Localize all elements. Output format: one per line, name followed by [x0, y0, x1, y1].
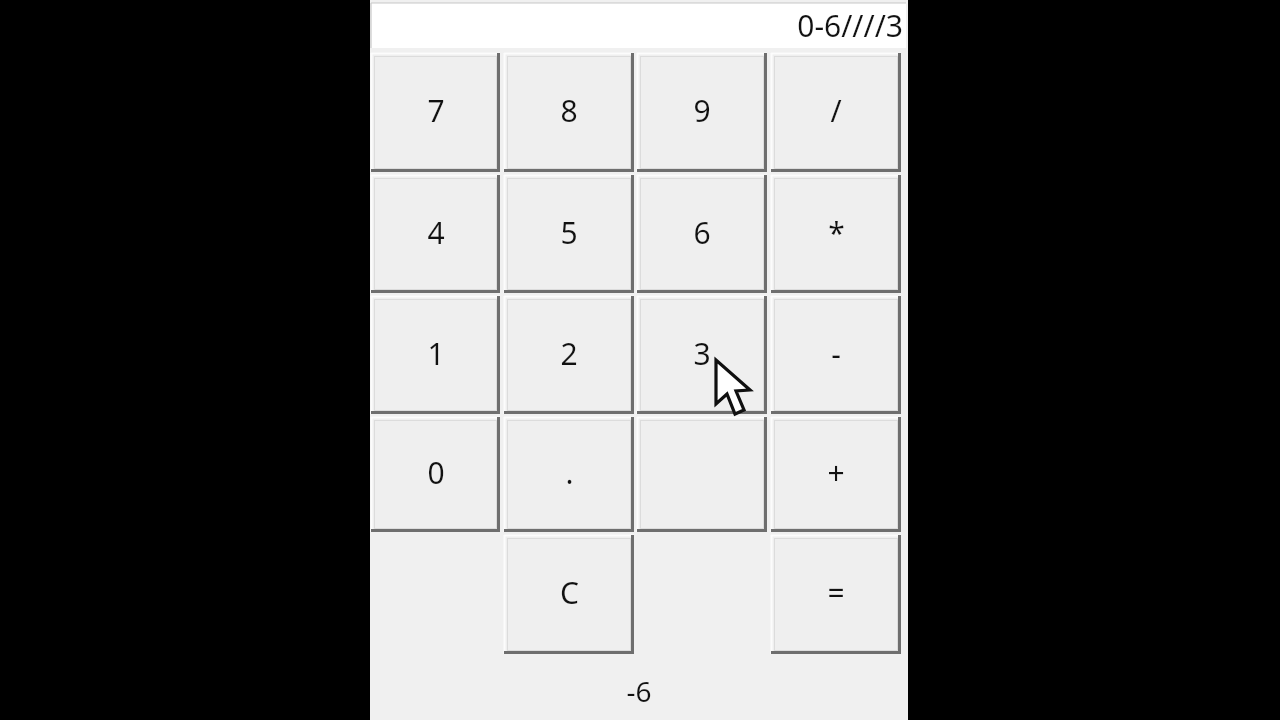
staticText: 4 [427, 212, 445, 253]
button[interactable]: 9 [637, 53, 767, 172]
button[interactable]: 4 [371, 175, 500, 293]
button[interactable]: 6 [637, 175, 767, 293]
staticText: 5 [560, 212, 578, 253]
staticText: - [831, 333, 841, 374]
button[interactable]: 3 [637, 296, 767, 414]
staticText: C [560, 572, 579, 613]
button[interactable]: 7 [371, 53, 500, 172]
staticText: = [827, 572, 845, 613]
button[interactable]: Add [771, 417, 901, 532]
staticText: + [827, 452, 845, 493]
button[interactable]: 0 [371, 417, 500, 532]
staticText: 2 [560, 333, 578, 374]
staticText: 6 [693, 212, 711, 253]
button[interactable]: Decimal point [504, 417, 634, 532]
button[interactable]: Subtract [771, 296, 901, 414]
button[interactable]: Clear [504, 535, 634, 654]
staticText: . [565, 452, 574, 493]
staticText: 0 [427, 452, 445, 493]
button[interactable]: Multiply [771, 175, 901, 293]
staticText: 9 [693, 90, 711, 131]
button[interactable]: Divide [771, 53, 901, 172]
staticText: 7 [427, 90, 445, 131]
staticText: 1 [427, 333, 445, 374]
button[interactable]: 8 [504, 53, 634, 172]
staticText: 8 [560, 90, 578, 131]
staticText: -6 [613, 672, 665, 708]
staticText: / [830, 90, 842, 131]
button[interactable]: Equals [771, 535, 901, 654]
button[interactable]: 1 [371, 296, 500, 414]
button[interactable]: 5 [504, 175, 634, 293]
button[interactable]: Blank key [637, 417, 767, 532]
staticText: 0-6////3 [797, 5, 903, 46]
staticText: * [828, 212, 845, 253]
button[interactable]: 2 [504, 296, 634, 414]
staticText: 3 [693, 333, 711, 374]
